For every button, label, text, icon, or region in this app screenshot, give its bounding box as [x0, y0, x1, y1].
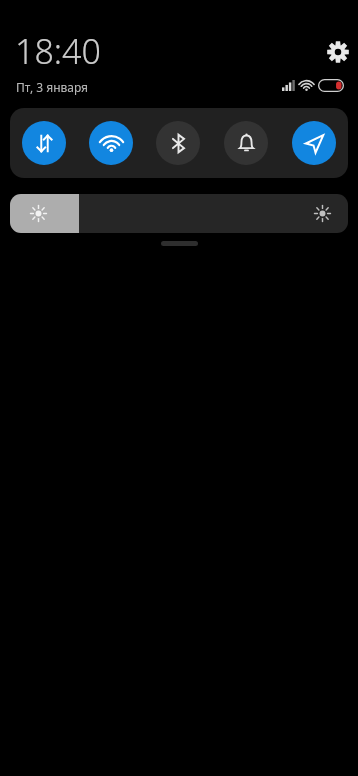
button[interactable]: Mobile data — [22, 121, 66, 165]
button[interactable]: Bluetooth — [156, 121, 200, 165]
button[interactable]: Location — [292, 121, 336, 165]
button[interactable]: Notifications — [224, 121, 268, 165]
button[interactable]: Expand panel — [161, 241, 198, 246]
staticText: 18:40 — [15, 28, 101, 74]
button[interactable]: Wi-Fi — [89, 121, 133, 165]
button[interactable]: Settings — [326, 40, 350, 64]
button[interactable]: Brightness — [10, 194, 348, 233]
staticText: Пт, 3 января — [16, 79, 89, 95]
